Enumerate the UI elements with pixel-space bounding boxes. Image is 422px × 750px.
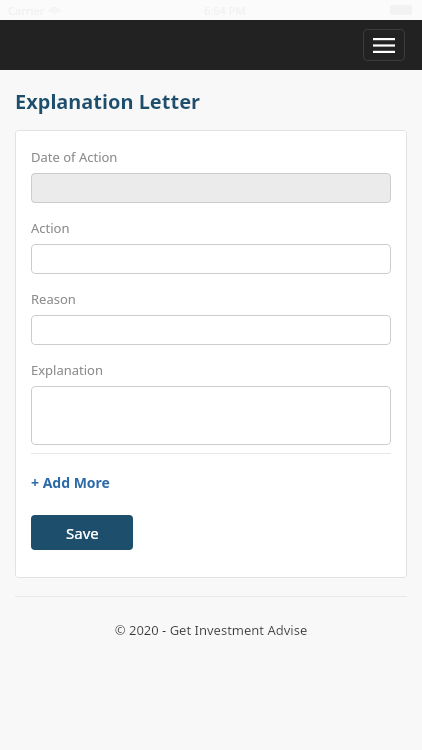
button[interactable]: + Add More [31, 473, 110, 492]
staticText: + Add More [31, 473, 110, 492]
button[interactable] [31, 173, 391, 203]
staticText: Explanation Letter [15, 88, 201, 115]
staticText: Save [66, 523, 99, 543]
button[interactable] [31, 244, 391, 274]
staticText: 6:64 PM [204, 3, 246, 18]
button[interactable]: Save [31, 515, 133, 550]
staticText: Explanation [31, 361, 104, 379]
button[interactable] [31, 315, 391, 345]
staticText: Date of Action [31, 148, 118, 166]
staticText: Action [31, 219, 70, 237]
staticText: Carrier [8, 3, 45, 18]
staticText: © 2020 - Get Investment Advise [15, 621, 407, 639]
staticText: Reason [31, 290, 76, 308]
button[interactable] [31, 386, 391, 445]
button[interactable]: Menu [363, 29, 405, 61]
